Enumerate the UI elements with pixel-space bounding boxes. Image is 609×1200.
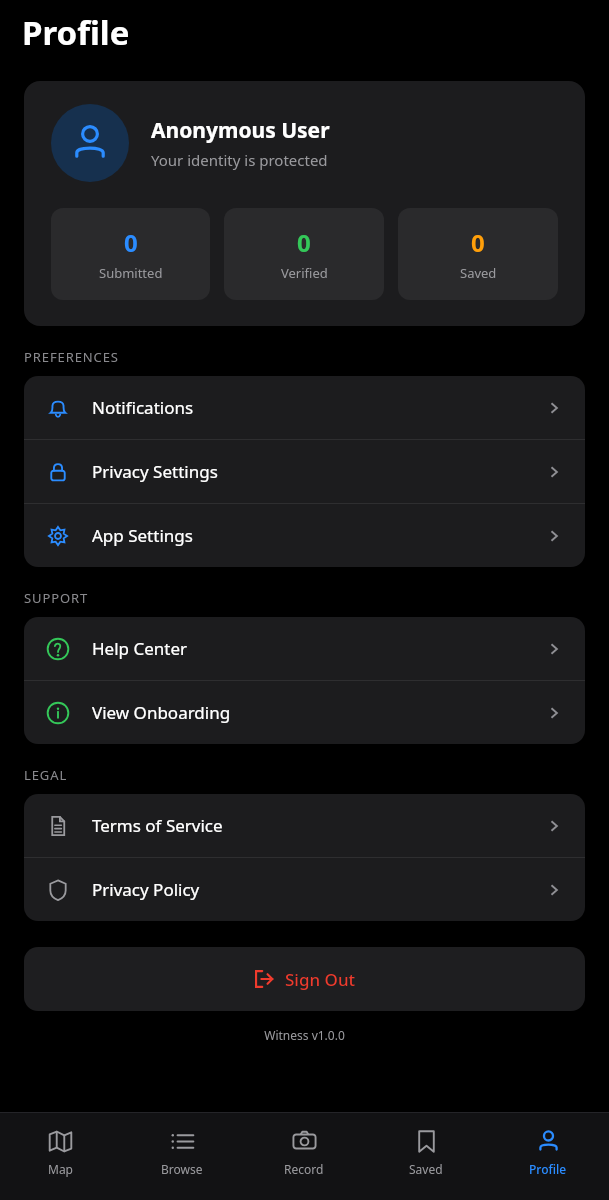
staticText: 0	[124, 226, 138, 259]
button[interactable]: Saved	[365, 1113, 487, 1200]
staticText: Anonymous User	[151, 116, 330, 145]
staticText: 0	[471, 226, 485, 259]
button[interactable]: App Settings	[24, 504, 585, 567]
staticText: Map	[48, 1161, 73, 1177]
staticText: Saved	[409, 1161, 443, 1177]
button[interactable]: Record	[243, 1113, 365, 1200]
button[interactable]: 0	[398, 208, 558, 300]
button[interactable]: 0	[224, 208, 384, 300]
button[interactable]: Sign Out	[24, 947, 585, 1011]
button[interactable]: 0	[51, 208, 210, 300]
staticText: Verified	[281, 264, 328, 282]
staticText: Privacy Settings	[92, 460, 218, 483]
staticText: LEGAL	[24, 766, 68, 784]
staticText: Profile	[529, 1161, 567, 1177]
button[interactable]: Map	[0, 1113, 121, 1200]
staticText: Record	[284, 1161, 324, 1177]
button[interactable]: Browse	[121, 1113, 243, 1200]
staticText: View Onboarding	[92, 701, 231, 724]
button[interactable]: Privacy Policy	[24, 858, 585, 921]
staticText: Your identity is protected	[151, 150, 328, 170]
staticText: Notifications	[92, 396, 194, 419]
button[interactable]: View Onboarding	[24, 681, 585, 744]
staticText: 0	[297, 226, 311, 259]
staticText: Witness v1.0.0	[0, 1027, 609, 1043]
button[interactable]: Profile	[487, 1113, 609, 1200]
staticText: Help Center	[92, 637, 188, 660]
staticText: Submitted	[99, 264, 163, 282]
staticText: Terms of Service	[92, 814, 223, 837]
staticText: Browse	[161, 1161, 203, 1177]
button[interactable]: Help Center	[24, 617, 585, 680]
button[interactable]: Terms of Service	[24, 794, 585, 857]
button[interactable]: Privacy Settings	[24, 440, 585, 503]
button[interactable]: Notifications	[24, 376, 585, 439]
staticText: Saved	[460, 264, 497, 282]
staticText: Privacy Policy	[92, 878, 200, 901]
staticText: Sign Out	[285, 968, 356, 991]
staticText: App Settings	[92, 524, 193, 547]
staticText: PREFERENCES	[24, 348, 119, 366]
staticText: SUPPORT	[24, 589, 89, 607]
staticText: Profile	[22, 10, 130, 55]
